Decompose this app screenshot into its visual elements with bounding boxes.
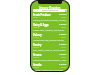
staticText: Aisle 1	[33, 16, 40, 19]
staticText: today	[61, 56, 67, 59]
button[interactable]: Fresh Produce	[31, 13, 69, 23]
button[interactable]: Snacks	[31, 63, 69, 71]
staticText: Rice, pasta, olive oil, tinned beans	[33, 49, 67, 52]
staticText: Garden peas, mixed berries, chips	[33, 59, 67, 62]
staticText: Crackers, salted nuts, popcorn, dips	[33, 69, 67, 71]
button[interactable]: Pantry	[31, 43, 69, 53]
staticText: Sourdough loaf, sesame bagels, rolls	[33, 39, 67, 42]
staticText: Search groceries	[42, 9, 59, 12]
staticText: 4 items	[59, 13, 67, 16]
staticText: Bakery	[33, 33, 42, 36]
staticText: today	[61, 36, 67, 39]
staticText: today	[61, 66, 67, 69]
staticText: Whole milk, cheddar, free-range eggs	[33, 29, 67, 32]
staticText: today	[61, 16, 67, 19]
staticText: 3 items	[59, 63, 67, 66]
staticText: Aisle 4	[33, 26, 40, 29]
staticText: 5 items	[59, 43, 67, 46]
staticText: Grocery Shopping	[39, 6, 61, 9]
staticText: Aisle 7	[33, 46, 40, 49]
staticText: Apples, bananas, spinach, carrots, kale	[33, 19, 67, 22]
staticText: today	[61, 26, 67, 29]
staticText: 2 items	[59, 33, 67, 36]
staticText: Frozen	[33, 53, 42, 56]
button[interactable]: Dairy & Eggs	[31, 23, 69, 33]
button[interactable]: Frozen	[31, 53, 69, 63]
staticText: Fresh Produce	[33, 13, 51, 16]
staticText: 2 items	[59, 53, 67, 56]
button[interactable]: Search groceries	[33, 9, 67, 12]
staticText: Pantry	[33, 43, 42, 46]
staticText: Snacks	[33, 63, 42, 66]
button[interactable]: Bakery	[31, 33, 69, 43]
staticText: Dairy & Eggs	[33, 23, 49, 26]
staticText: 3 items	[59, 23, 67, 26]
staticText: today	[61, 46, 67, 49]
staticText: Aisle 9	[33, 56, 40, 59]
staticText: Aisle 2	[33, 36, 40, 39]
staticText: Aisle 6	[33, 66, 40, 69]
